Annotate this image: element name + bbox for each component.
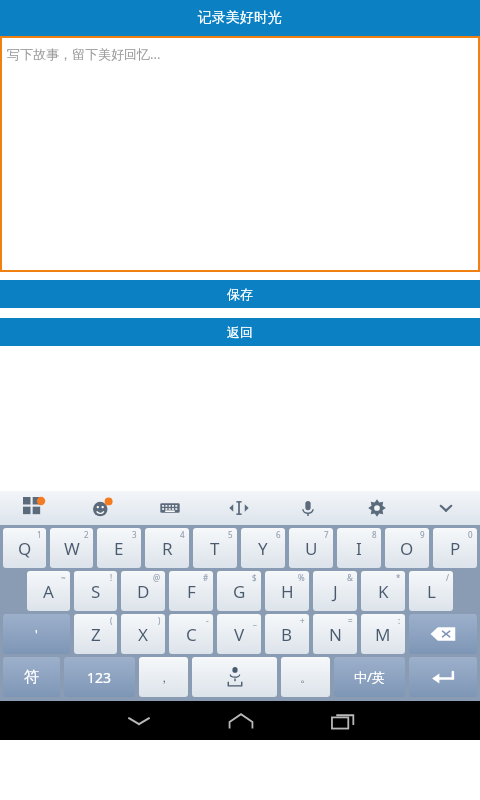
- staticText: :: [398, 615, 401, 626]
- button[interactable]: Recents: [298, 701, 387, 740]
- button[interactable]: R: [145, 528, 189, 568]
- staticText: H: [281, 580, 294, 603]
- button[interactable]: Z: [74, 614, 117, 654]
- staticText: 6: [276, 529, 281, 540]
- button[interactable]: T: [193, 528, 237, 568]
- staticText: 。: [300, 670, 312, 685]
- button[interactable]: 123: [64, 657, 135, 697]
- button[interactable]: J: [313, 571, 357, 611]
- button[interactable]: 写下故事，留下美好回忆...: [0, 36, 480, 272]
- staticText: O: [400, 537, 414, 560]
- staticText: -: [206, 615, 209, 626]
- button[interactable]: N: [313, 614, 357, 654]
- button[interactable]: V: [217, 614, 261, 654]
- staticText: %: [298, 572, 305, 583]
- staticText: B: [281, 623, 293, 646]
- staticText: 返回: [227, 324, 253, 340]
- staticText: N: [329, 623, 342, 646]
- staticText: Z: [91, 623, 101, 646]
- staticText: S: [91, 580, 101, 603]
- button[interactable]: H: [265, 571, 309, 611]
- button[interactable]: A: [27, 571, 70, 611]
- staticText: X: [138, 623, 148, 646]
- button[interactable]: E: [97, 528, 141, 568]
- staticText: ': [35, 626, 38, 642]
- staticText: /: [446, 572, 449, 583]
- button[interactable]: P: [433, 528, 477, 568]
- button[interactable]: B: [265, 614, 309, 654]
- staticText: 2: [84, 529, 89, 540]
- button[interactable]: Backspace: [409, 614, 477, 654]
- staticText: 1: [37, 529, 42, 540]
- staticText: 保存: [227, 286, 253, 302]
- button[interactable]: ，: [139, 657, 188, 697]
- staticText: =: [348, 615, 353, 626]
- button[interactable]: 返回: [0, 318, 480, 346]
- staticText: E: [114, 537, 124, 560]
- staticText: 3: [132, 529, 137, 540]
- button[interactable]: L: [409, 571, 453, 611]
- button[interactable]: Back: [94, 701, 183, 740]
- staticText: 123: [87, 668, 112, 687]
- button[interactable]: 。: [281, 657, 330, 697]
- staticText: $: [252, 572, 257, 583]
- staticText: 写下故事，留下美好回忆...: [7, 45, 161, 63]
- button[interactable]: F: [169, 571, 213, 611]
- button[interactable]: Settings: [342, 491, 411, 525]
- button[interactable]: 中/英: [334, 657, 405, 697]
- staticText: R: [162, 537, 173, 560]
- staticText: U: [305, 537, 318, 560]
- staticText: G: [233, 580, 246, 603]
- staticText: !: [110, 572, 113, 583]
- staticText: L: [427, 580, 436, 603]
- button[interactable]: Apps: [0, 491, 68, 525]
- staticText: 7: [324, 529, 329, 540]
- staticText: T: [210, 537, 220, 560]
- staticText: M: [375, 623, 391, 646]
- button[interactable]: Move cursor: [204, 491, 273, 525]
- staticText: &: [347, 572, 353, 583]
- staticText: W: [64, 537, 80, 560]
- button[interactable]: I: [337, 528, 381, 568]
- staticText: ，: [158, 670, 170, 685]
- staticText: 5: [228, 529, 233, 540]
- button[interactable]: Enter: [409, 657, 477, 697]
- staticText: P: [450, 537, 461, 560]
- staticText: 4: [180, 529, 185, 540]
- button[interactable]: 记录美好时光: [0, 0, 480, 36]
- button[interactable]: K: [361, 571, 405, 611]
- button[interactable]: Home: [196, 701, 285, 740]
- button[interactable]: Keyboard layout: [136, 491, 204, 525]
- button[interactable]: M: [361, 614, 405, 654]
- button[interactable]: Q: [3, 528, 46, 568]
- staticText: 9: [420, 529, 425, 540]
- button[interactable]: G: [217, 571, 261, 611]
- staticText: (: [110, 615, 113, 626]
- button[interactable]: 保存: [0, 280, 480, 308]
- staticText: Y: [258, 537, 268, 560]
- staticText: V: [234, 623, 245, 646]
- staticText: A: [43, 580, 54, 603]
- button[interactable]: O: [385, 528, 429, 568]
- staticText: Q: [18, 537, 32, 560]
- staticText: C: [186, 623, 197, 646]
- button[interactable]: C: [169, 614, 213, 654]
- button[interactable]: X: [121, 614, 165, 654]
- button[interactable]: D: [121, 571, 165, 611]
- button[interactable]: Space: [192, 657, 277, 697]
- button[interactable]: ': [3, 614, 70, 654]
- button[interactable]: 符: [3, 657, 60, 697]
- staticText: +: [300, 615, 305, 626]
- staticText: *: [396, 572, 401, 583]
- button[interactable]: Y: [241, 528, 285, 568]
- button[interactable]: Hide keyboard: [411, 491, 480, 525]
- button[interactable]: S: [74, 571, 117, 611]
- staticText: @: [153, 572, 161, 583]
- staticText: ~: [61, 572, 66, 583]
- staticText: 符: [24, 668, 39, 687]
- button[interactable]: U: [289, 528, 333, 568]
- button[interactable]: Voice input: [273, 491, 342, 525]
- button[interactable]: W: [50, 528, 93, 568]
- button[interactable]: Emoji: [68, 491, 136, 525]
- staticText: I: [356, 537, 362, 560]
